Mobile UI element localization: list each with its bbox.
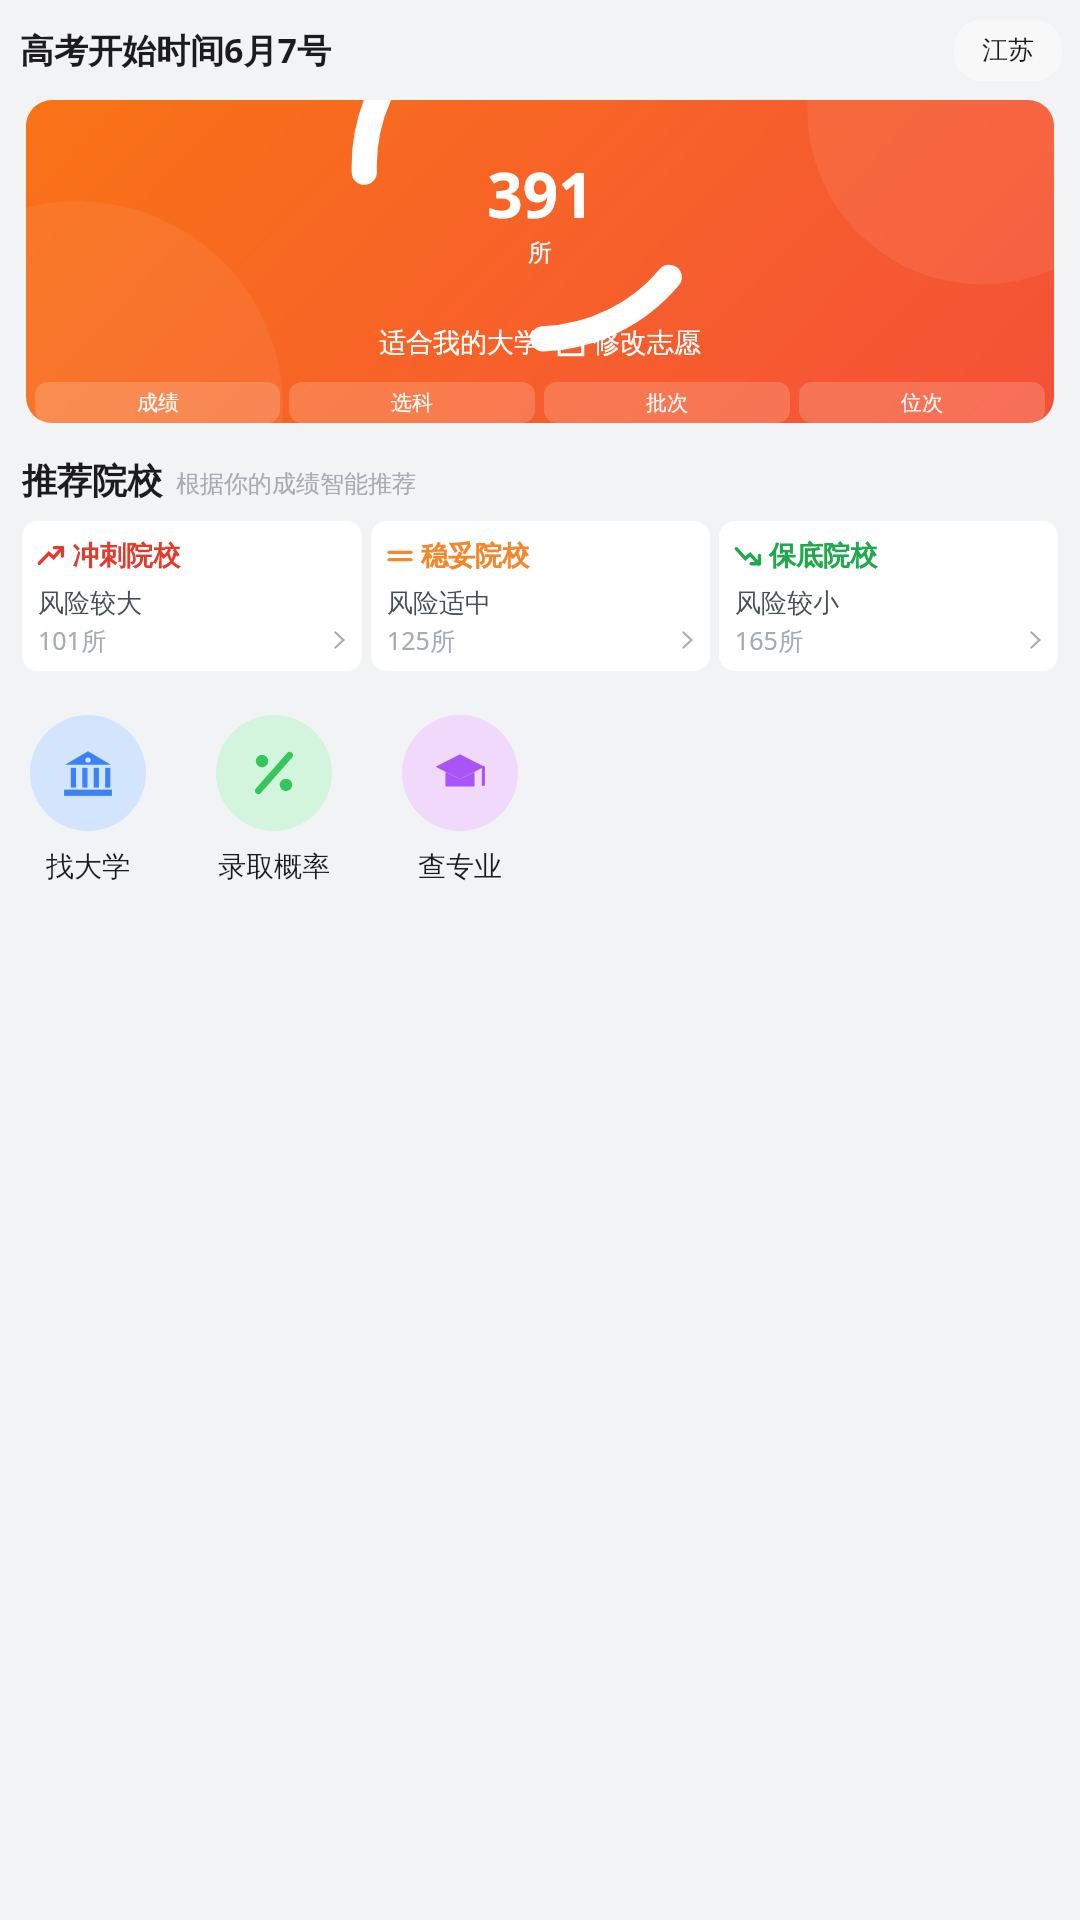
staticText: 根据你的成绩智能推荐 bbox=[176, 469, 416, 499]
button[interactable]: 冲刺院校 bbox=[22, 521, 362, 671]
staticText: 125所 bbox=[387, 623, 455, 657]
staticText: 找大学 bbox=[46, 849, 130, 884]
staticText: 查专业 bbox=[418, 849, 502, 884]
staticText: 风险较小 bbox=[735, 587, 839, 620]
staticText: 成绩 bbox=[137, 390, 179, 415]
staticText: 165所 bbox=[735, 623, 803, 657]
staticText: 录取概率 bbox=[218, 849, 330, 884]
staticText: 101所 bbox=[38, 623, 106, 657]
staticText: 适合我的大学 bbox=[379, 326, 541, 360]
button[interactable]: 录取概率 bbox=[212, 711, 336, 888]
other: 修改志愿 bbox=[557, 329, 585, 357]
staticText: 所 bbox=[528, 238, 552, 268]
staticText: 保底院校 bbox=[769, 539, 877, 573]
button[interactable]: 选科 bbox=[289, 382, 535, 423]
button[interactable]: 适合我的大学 bbox=[371, 322, 709, 364]
button[interactable]: 391 bbox=[26, 100, 1054, 423]
staticText: 391 bbox=[487, 152, 594, 236]
button[interactable]: 成绩 bbox=[35, 382, 280, 423]
staticText: 选科 bbox=[391, 390, 433, 415]
button[interactable]: 找大学 bbox=[26, 711, 150, 888]
staticText: 批次 bbox=[646, 390, 688, 415]
staticText: 位次 bbox=[901, 390, 943, 415]
button[interactable]: 保底院校 bbox=[719, 521, 1058, 671]
staticText: 高考开始时间6月7号 bbox=[20, 27, 331, 73]
staticText: 江苏 bbox=[982, 34, 1034, 67]
staticText: 修改志愿 bbox=[593, 326, 701, 360]
staticText: 风险较大 bbox=[38, 587, 142, 620]
button[interactable]: 江苏 bbox=[954, 20, 1062, 81]
button[interactable]: 位次 bbox=[799, 382, 1045, 423]
button[interactable]: 查专业 bbox=[398, 711, 522, 888]
button[interactable]: 稳妥院校 bbox=[371, 521, 710, 671]
staticText: 风险适中 bbox=[387, 587, 491, 620]
button[interactable]: 批次 bbox=[544, 382, 790, 423]
staticText: 冲刺院校 bbox=[72, 539, 180, 573]
staticText: 稳妥院校 bbox=[421, 539, 529, 573]
staticText: 推荐院校 bbox=[22, 459, 162, 503]
